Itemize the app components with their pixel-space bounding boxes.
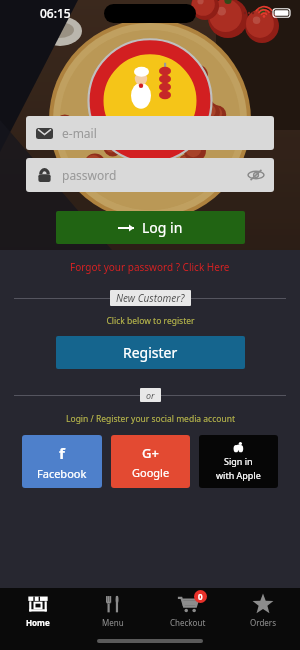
staticText: Facebook xyxy=(37,466,87,481)
staticText: Sign in xyxy=(224,455,253,467)
staticText: Forgot your password ? Click Here xyxy=(70,260,230,274)
button[interactable]: Log in xyxy=(56,211,245,244)
button[interactable]: Home xyxy=(0,588,75,632)
staticText: New Customer? xyxy=(116,291,185,305)
button[interactable]: Sign in xyxy=(199,435,278,488)
other: Show password xyxy=(248,167,264,183)
staticText: password xyxy=(62,167,117,183)
staticText: or xyxy=(146,389,155,401)
staticText: G+ xyxy=(142,444,159,462)
staticText: Login / Register your social media accou… xyxy=(66,413,235,425)
button[interactable]: G+ xyxy=(111,435,190,488)
staticText: Register xyxy=(123,343,178,362)
staticText: Checkout xyxy=(170,617,206,628)
staticText: Google xyxy=(132,465,170,480)
button[interactable]: Orders xyxy=(225,588,300,632)
staticText: Orders xyxy=(250,617,276,628)
button[interactable]: 0 xyxy=(150,588,225,632)
staticText: Click below to register xyxy=(106,315,195,327)
button[interactable]: password xyxy=(26,158,274,192)
button[interactable]: Menu xyxy=(75,588,150,632)
staticText: Home xyxy=(26,617,50,628)
button[interactable]: e-mail xyxy=(26,116,274,150)
staticText: Log in xyxy=(142,218,183,237)
button[interactable]: Forgot your password ? Click Here xyxy=(0,260,300,274)
button[interactable]: f xyxy=(22,435,102,488)
staticText: e-mail xyxy=(62,125,97,141)
staticText: Menu xyxy=(102,617,124,628)
staticText: f xyxy=(59,443,65,463)
staticText: 0 xyxy=(198,591,203,602)
button[interactable]: Register xyxy=(56,336,245,369)
staticText: with Apple xyxy=(216,469,261,481)
staticText: 06:15 xyxy=(40,5,71,21)
